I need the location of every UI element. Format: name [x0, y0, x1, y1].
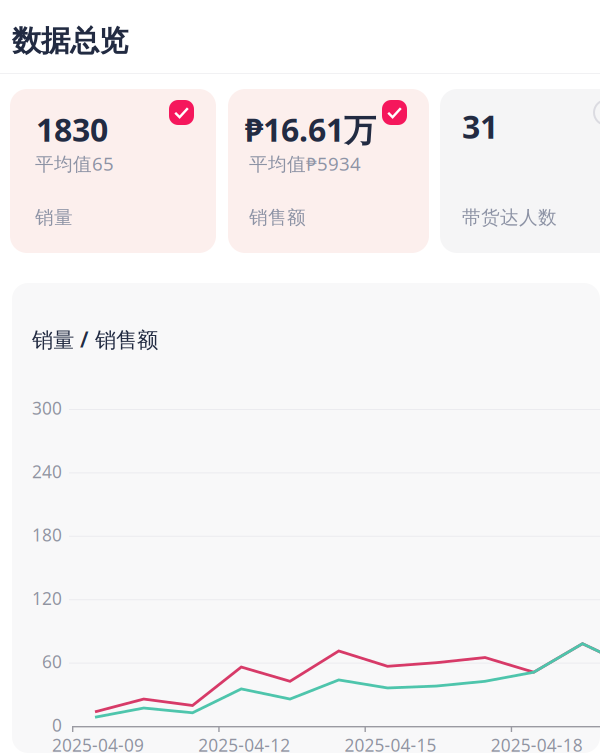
staticText: 2025-04-15: [344, 733, 436, 753]
staticText: 60: [42, 650, 62, 673]
staticText: 120: [32, 587, 62, 610]
button[interactable]: 31: [440, 89, 600, 253]
staticText: 2025-04-12: [198, 733, 290, 753]
staticText: 平均值65: [35, 151, 114, 176]
staticText: 2025-04-18: [491, 733, 583, 753]
staticText: 销售额: [249, 206, 306, 229]
staticText: 180: [32, 523, 62, 546]
staticText: 2025-04-09: [52, 733, 144, 753]
staticText: 带货达人数: [462, 206, 557, 229]
staticText: 300: [32, 396, 62, 419]
staticText: 销量: [35, 206, 73, 229]
staticText: 240: [32, 460, 62, 483]
staticText: 销量 / 销售额: [32, 325, 158, 353]
button[interactable]: 1830: [10, 89, 216, 253]
staticText: 数据总览: [12, 23, 128, 59]
staticText: 31: [462, 105, 498, 147]
button[interactable]: ₱16.61万: [228, 89, 429, 253]
staticText: 1830: [36, 108, 108, 150]
staticText: ₱16.61万: [245, 108, 376, 150]
staticText: 平均值₱5934: [249, 151, 361, 176]
staticText: 0: [52, 713, 62, 736]
